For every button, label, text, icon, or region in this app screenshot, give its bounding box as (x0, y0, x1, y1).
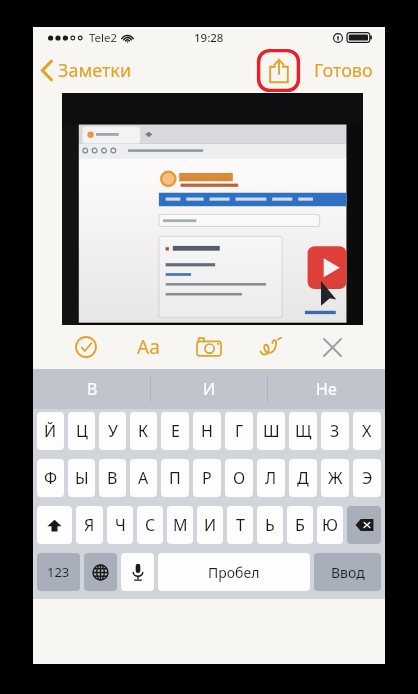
button[interactable]: Backspace (347, 506, 381, 544)
staticText: Ввод (331, 563, 365, 582)
button[interactable]: З (321, 412, 349, 450)
button[interactable]: Ч (107, 506, 133, 544)
staticText: И (204, 514, 217, 536)
staticText: У (108, 420, 118, 442)
button[interactable]: И (197, 506, 223, 544)
button[interactable]: Р (193, 459, 221, 497)
button[interactable]: Ц (68, 412, 95, 450)
button[interactable]: М (167, 506, 193, 544)
button[interactable]: Й (37, 412, 64, 450)
staticText: Х (362, 420, 372, 442)
button[interactable]: Я (76, 506, 103, 544)
staticText: Aa (137, 334, 160, 360)
staticText: Tele2 (89, 30, 118, 46)
staticText: В (87, 378, 98, 400)
button[interactable]: Э (353, 459, 381, 497)
button[interactable]: Share (257, 49, 300, 92)
button[interactable]: И (151, 369, 268, 409)
button[interactable]: Checklist (69, 330, 103, 364)
button[interactable]: С (137, 506, 163, 544)
button[interactable]: Ы (68, 459, 95, 497)
staticText: Ж (328, 467, 343, 489)
button[interactable]: Ж (321, 459, 349, 497)
staticText: Ч (115, 514, 126, 536)
staticText: Пробел (208, 563, 260, 582)
staticText: Е (171, 420, 180, 442)
button[interactable]: Готово (310, 54, 377, 87)
staticText: Й (44, 420, 57, 442)
button[interactable]: Б (287, 506, 313, 544)
button[interactable]: А (130, 459, 157, 497)
button[interactable]: Ь (257, 506, 283, 544)
staticText: Ц (76, 420, 88, 442)
button[interactable]: Aa (131, 330, 165, 364)
staticText: О (233, 467, 246, 489)
button[interactable]: Л (257, 459, 285, 497)
staticText: В (107, 467, 118, 489)
button[interactable]: Г (225, 412, 253, 450)
button[interactable]: Dictation (121, 553, 154, 591)
staticText: Ы (75, 467, 89, 489)
button[interactable]: Т (227, 506, 253, 544)
staticText: Щ (295, 420, 312, 442)
button[interactable]: Д (289, 459, 317, 497)
staticText: 123 (47, 563, 70, 581)
staticText: Ь (265, 514, 275, 536)
staticText: Д (297, 467, 309, 489)
staticText: 19:28 (194, 30, 224, 46)
staticText: Я (84, 514, 95, 536)
button[interactable]: Х (353, 412, 381, 450)
staticText: А (138, 467, 149, 489)
button[interactable]: Shift (37, 506, 72, 544)
staticText: Б (295, 514, 305, 536)
staticText: Готово (314, 58, 373, 83)
staticText: Ш (263, 420, 280, 442)
staticText: С (145, 514, 156, 536)
button[interactable]: Ш (257, 412, 285, 450)
staticText: К (138, 420, 149, 442)
button[interactable]: 123 (37, 553, 80, 591)
button[interactable]: Не (268, 369, 385, 409)
button[interactable]: Markup (254, 330, 288, 364)
staticText: З (330, 420, 340, 442)
button[interactable]: П (161, 459, 189, 497)
staticText: Не (316, 378, 337, 400)
staticText: Заметки (58, 58, 132, 83)
staticText: И (203, 378, 216, 400)
button[interactable]: Заметки (33, 52, 142, 89)
button[interactable]: Ю (317, 506, 343, 544)
button[interactable]: В (33, 369, 151, 409)
button[interactable]: Пробел (158, 553, 310, 591)
staticText: Э (362, 467, 373, 489)
button[interactable]: Camera (192, 330, 226, 364)
button[interactable]: К (130, 412, 157, 450)
staticText: Т (236, 514, 245, 536)
staticText: М (173, 514, 188, 536)
button[interactable] (62, 93, 363, 325)
button[interactable]: Close (315, 330, 349, 364)
button[interactable]: Change keyboard language (84, 553, 117, 591)
staticText: Н (201, 420, 213, 442)
button[interactable]: Е (161, 412, 189, 450)
staticText: П (169, 467, 181, 489)
button[interactable]: Ф (37, 459, 64, 497)
button[interactable]: Н (193, 412, 221, 450)
button[interactable]: У (99, 412, 126, 450)
staticText: Л (265, 467, 277, 489)
staticText: Г (235, 420, 244, 442)
staticText: Р (202, 467, 212, 489)
button[interactable]: В (99, 459, 126, 497)
button[interactable]: Ввод (314, 553, 381, 591)
staticText: Ф (44, 467, 58, 489)
staticText: Ю (322, 514, 338, 536)
button[interactable]: Щ (289, 412, 317, 450)
button[interactable]: О (225, 459, 253, 497)
